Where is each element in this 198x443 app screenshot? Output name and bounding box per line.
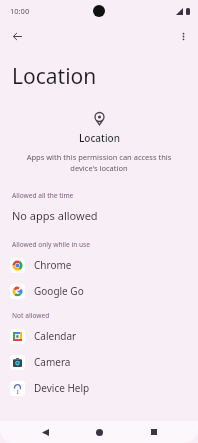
button[interactable]: Google Go [0, 278, 198, 304]
staticText: 10:00 [10, 6, 30, 16]
staticText: Apps with this permission can access thi… [22, 152, 176, 173]
staticText: Camera [34, 355, 71, 369]
staticText: No apps allowed [12, 208, 98, 223]
button[interactable]: Back [35, 422, 55, 442]
staticText: Calendar [34, 329, 77, 343]
staticText: Location [12, 62, 97, 91]
button[interactable]: Home [89, 422, 109, 442]
button[interactable]: More options [172, 25, 194, 47]
button[interactable]: Calendar [0, 323, 198, 349]
button[interactable]: Chrome [0, 252, 198, 278]
staticText: Allowed only while in use [12, 240, 90, 249]
staticText: Location [79, 131, 120, 145]
button[interactable]: Recent apps [144, 422, 164, 442]
staticText: Not allowed [12, 311, 50, 320]
staticText: Allowed all the time [12, 191, 74, 200]
button[interactable]: Back [6, 25, 28, 47]
button[interactable]: Device Help [0, 375, 198, 401]
button[interactable]: Camera [0, 349, 198, 375]
button[interactable]: No apps allowed [0, 203, 198, 227]
staticText: Google Go [34, 284, 84, 298]
staticText: Device Help [34, 381, 90, 395]
staticText: Chrome [34, 258, 72, 272]
